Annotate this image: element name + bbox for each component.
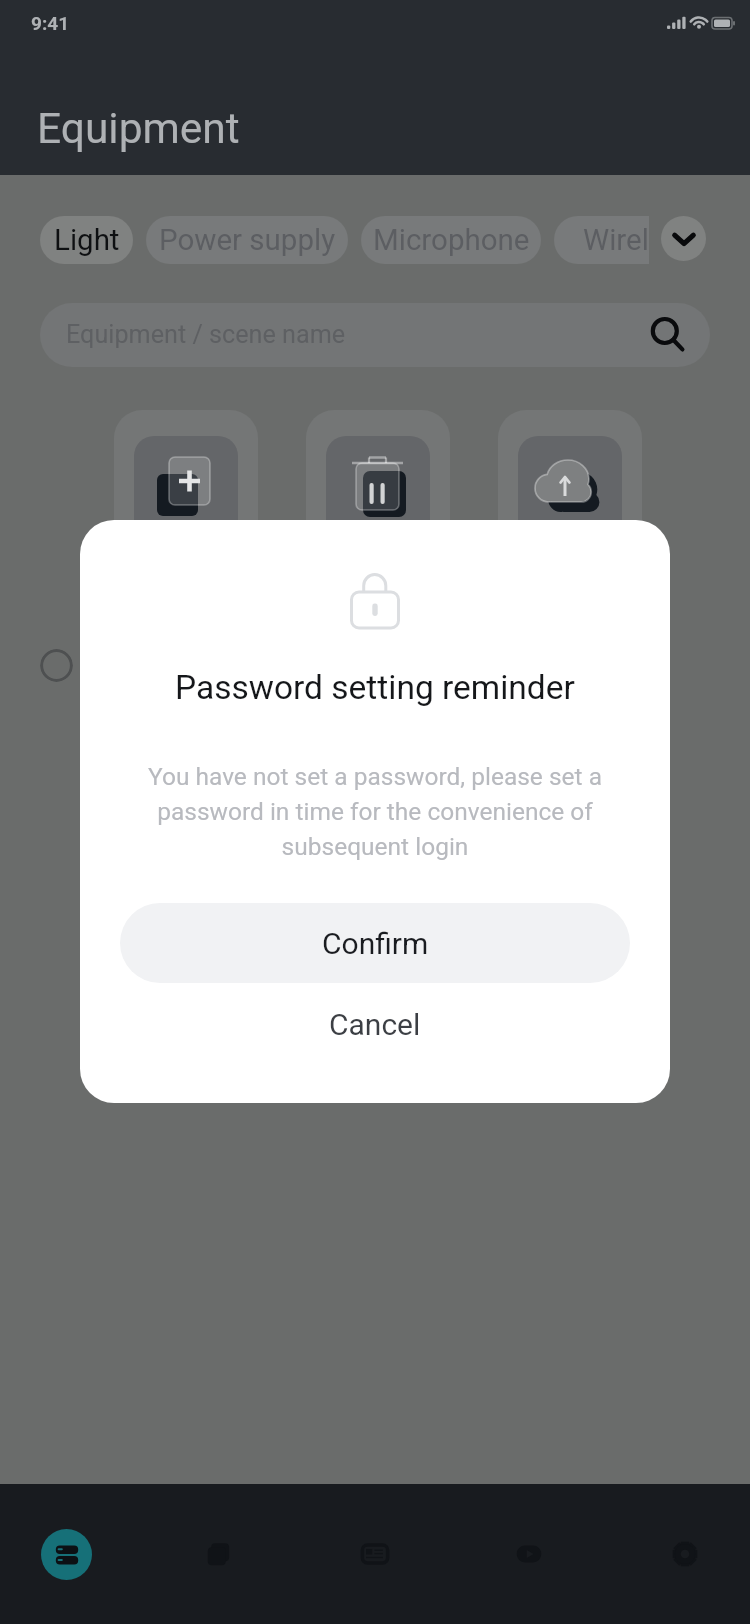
staticText: Light xyxy=(54,223,120,258)
button[interactable]: Devices xyxy=(14,1502,118,1606)
button[interactable]: Delete xyxy=(306,410,450,650)
staticText: Wireless xyxy=(583,223,649,258)
button[interactable]: Cancel xyxy=(120,984,630,1064)
staticText: Password setting reminder xyxy=(175,668,575,707)
staticText: Microphone xyxy=(373,223,530,258)
staticText: Equipment xyxy=(37,104,240,154)
button[interactable]: Equipment / scene name xyxy=(40,303,710,367)
button[interactable]: Light xyxy=(40,216,133,264)
button[interactable]: Expand filters xyxy=(661,216,706,261)
staticText: Confirm xyxy=(322,926,429,961)
button[interactable]: Upload xyxy=(498,410,642,650)
staticText: Power supply xyxy=(159,223,336,258)
button[interactable]: Microphone xyxy=(361,216,541,264)
button[interactable]: Wireless xyxy=(554,216,649,264)
staticText: 9:41 xyxy=(31,12,70,34)
button[interactable]: Confirm xyxy=(120,903,630,983)
staticText: You have not set a password, please set … xyxy=(148,762,602,861)
other: Search xyxy=(648,315,688,355)
button[interactable]: Select xyxy=(40,649,73,682)
staticText: Cancel xyxy=(329,1007,421,1042)
button[interactable]: Power supply xyxy=(146,216,348,264)
button[interactable]: Add xyxy=(114,410,258,650)
staticText: Equipment / scene name xyxy=(66,320,346,350)
